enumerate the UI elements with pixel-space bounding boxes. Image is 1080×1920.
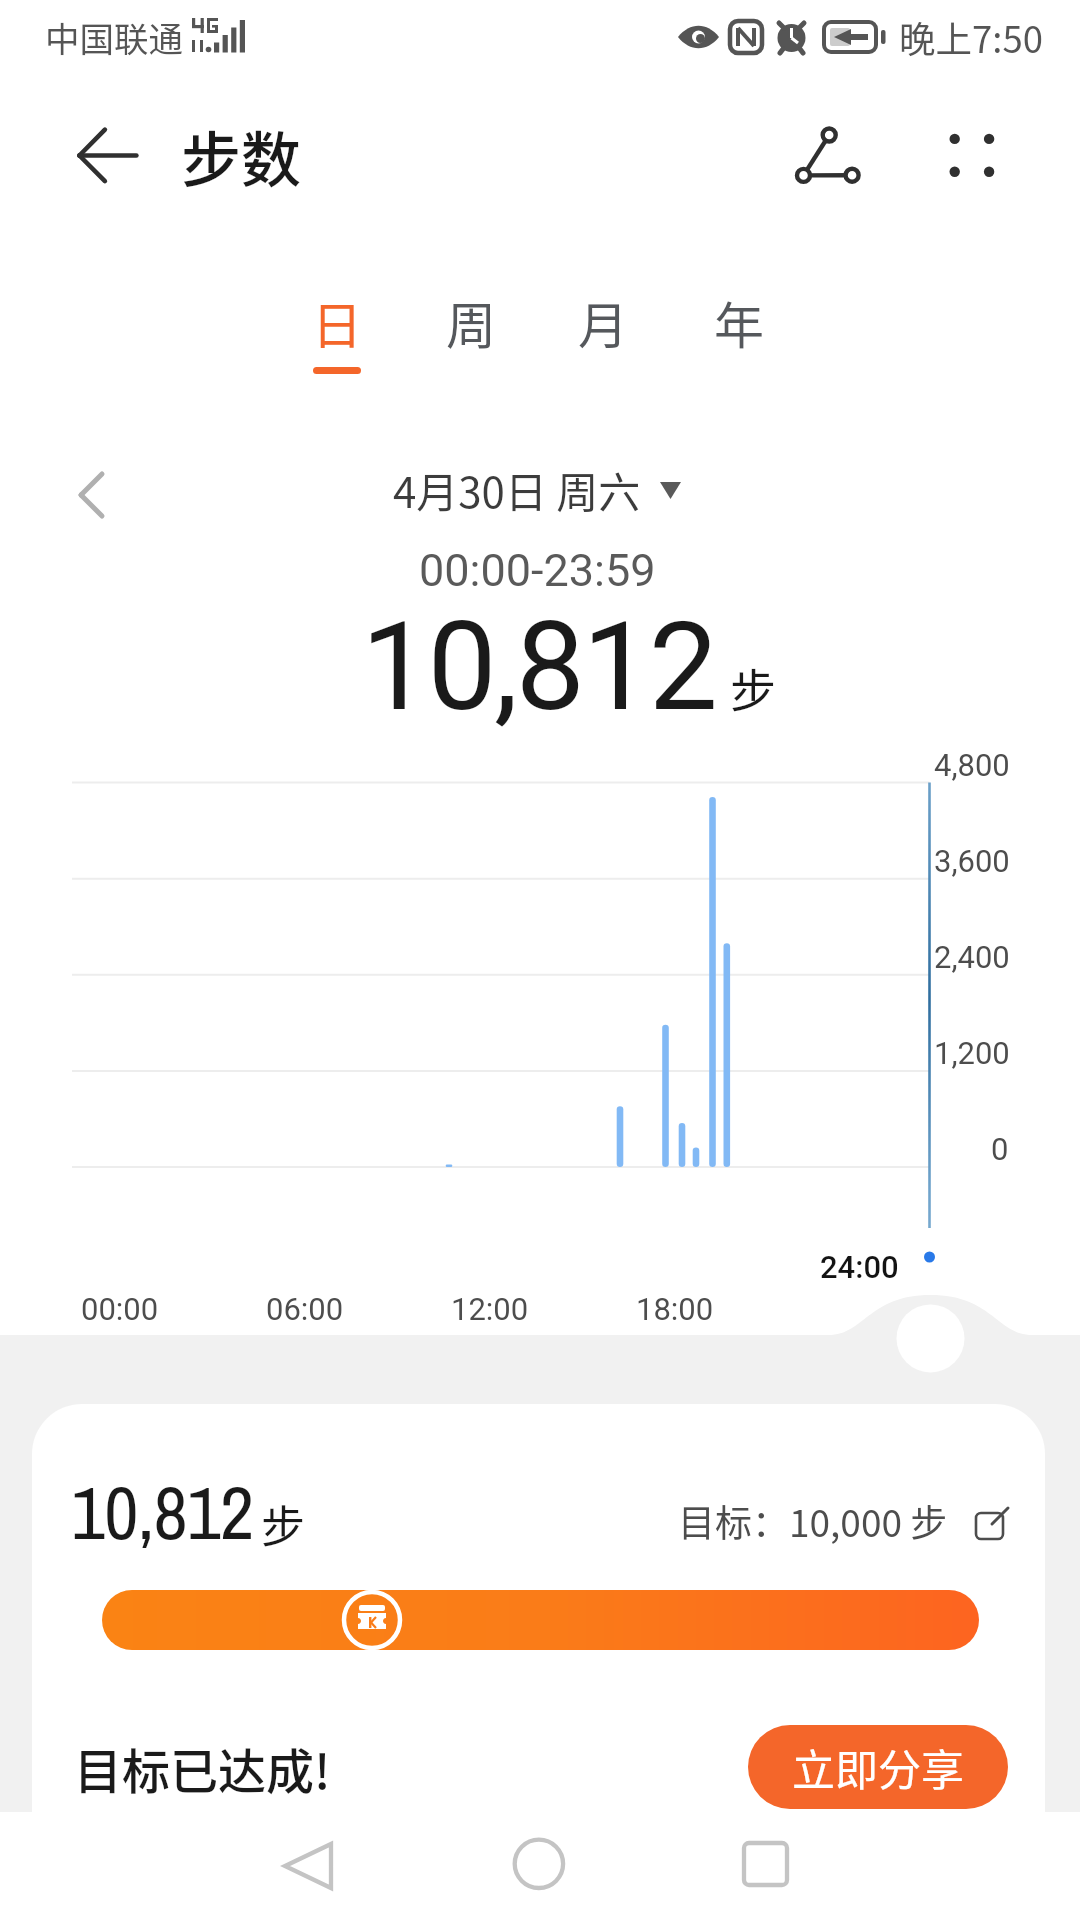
staticText: 月	[578, 286, 628, 358]
staticText: 06:00	[266, 1291, 344, 1327]
staticText: 00:00-23:59	[419, 544, 656, 597]
button[interactable]: Back	[281, 1838, 335, 1892]
staticText: 目标：10,000 步	[678, 1494, 948, 1548]
button[interactable]: Share	[778, 106, 878, 206]
staticText: 10,812	[71, 1461, 254, 1562]
staticText: 周	[446, 286, 496, 358]
staticText: 步	[730, 654, 776, 721]
button[interactable]: 年	[687, 286, 791, 384]
button[interactable]: 立即分享	[748, 1725, 1008, 1809]
button[interactable]: More options	[920, 106, 1020, 206]
staticText: 18:00	[636, 1291, 714, 1327]
staticText: 0	[991, 1131, 1009, 1167]
button[interactable]: Back	[56, 110, 146, 200]
button[interactable]: Home	[512, 1838, 566, 1892]
staticText: 中国联通	[45, 12, 183, 62]
staticText: 4月30日 周六	[393, 459, 641, 520]
staticText: 目标已达成!	[74, 1733, 331, 1803]
staticText: 00:00	[81, 1291, 159, 1327]
button[interactable]: Previous day	[52, 452, 136, 536]
staticText: 立即分享	[792, 1736, 964, 1798]
staticText: 2,400	[934, 939, 1010, 975]
button[interactable]: 月	[551, 286, 655, 384]
staticText: 3,600	[934, 843, 1010, 879]
button[interactable]: 日	[285, 286, 389, 384]
staticText: 年	[714, 286, 764, 358]
staticText: 12:00	[451, 1291, 529, 1327]
staticText: 晚上7:50	[899, 11, 1043, 64]
button[interactable]: Recents	[740, 1838, 794, 1892]
button[interactable]: Edit goal	[975, 1507, 1009, 1541]
staticText: 24:00	[820, 1249, 899, 1285]
staticText: 日	[312, 286, 362, 358]
staticText: 步数	[181, 112, 301, 199]
staticText: 1,200	[934, 1035, 1010, 1071]
staticText: 10,812	[361, 595, 716, 739]
staticText: 步	[261, 1492, 305, 1556]
button[interactable]: 周	[419, 286, 523, 384]
staticText: 4,800	[934, 747, 1010, 783]
button[interactable]: Step goal progress	[102, 1590, 979, 1650]
